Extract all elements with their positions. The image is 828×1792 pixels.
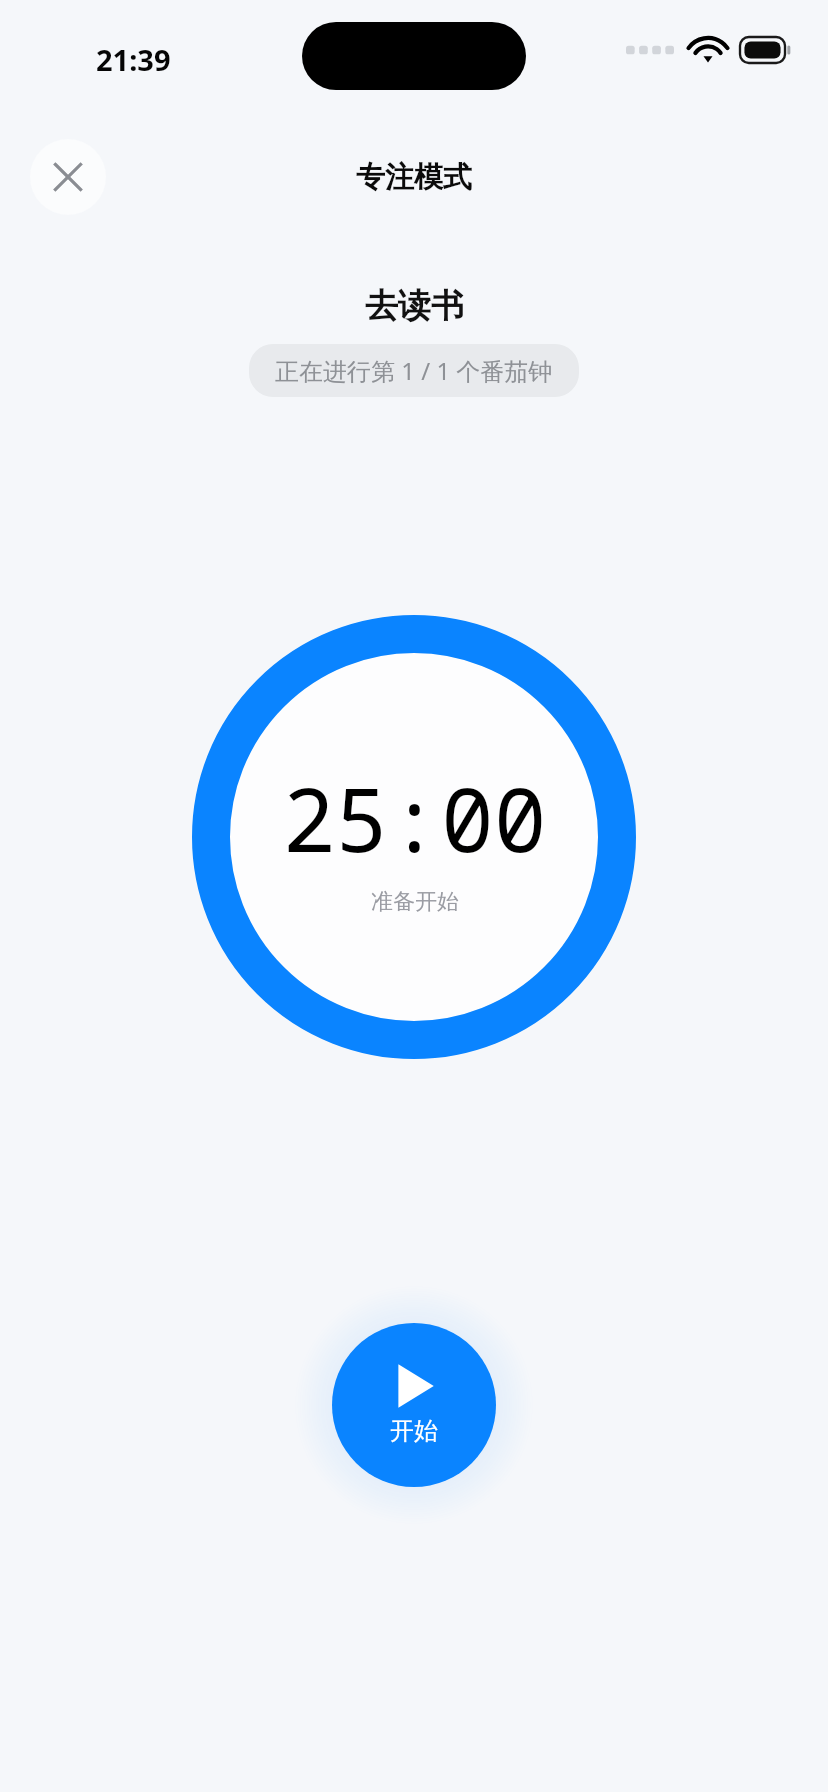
staticText: 专注模式 <box>356 159 472 196</box>
staticText: 开始 <box>390 1416 438 1446</box>
button[interactable]: 关闭 <box>30 139 106 215</box>
button[interactable]: 开始 <box>332 1323 496 1487</box>
staticText: 25:00 <box>282 758 547 878</box>
button[interactable]: 正在进行第 1 / 1 个番茄钟 <box>249 344 579 397</box>
staticText: 21:39 <box>96 40 171 79</box>
staticText: 准备开始 <box>371 888 459 916</box>
staticText: 去读书 <box>365 285 464 327</box>
staticText: 正在进行第 1 / 1 个番茄钟 <box>275 354 553 387</box>
